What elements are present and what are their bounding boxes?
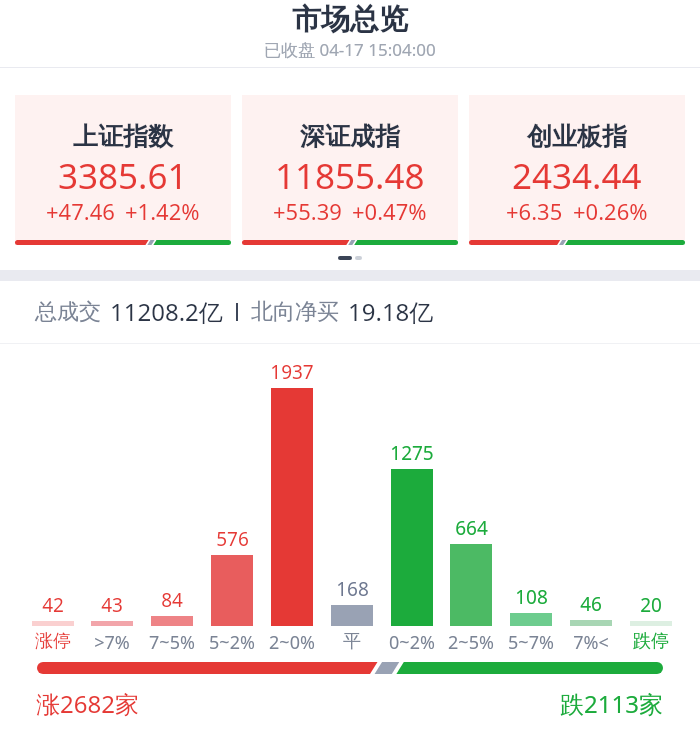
staticText: 1937 <box>270 359 314 385</box>
staticText: 20 <box>640 592 662 618</box>
staticText: 7~5% <box>149 630 195 655</box>
staticText: 2434.44 <box>512 152 642 200</box>
button[interactable]: 深证成指 <box>242 95 458 245</box>
staticText: 108 <box>515 584 548 610</box>
staticText: 19.18亿 <box>348 295 434 328</box>
staticText: 168 <box>336 576 369 602</box>
staticText: 11855.48 <box>275 152 425 200</box>
staticText: 43 <box>101 592 123 618</box>
staticText: +0.47% <box>352 196 427 226</box>
staticText: 664 <box>455 515 488 541</box>
staticText: 北向净买 <box>251 298 339 326</box>
staticText: 5~7% <box>508 630 554 655</box>
staticText: +1.42% <box>125 196 200 226</box>
staticText: 上证指数 <box>73 121 173 152</box>
staticText: 涨2682家 <box>36 687 139 720</box>
staticText: 跌2113家 <box>560 687 663 720</box>
staticText: 跌停 <box>633 630 669 653</box>
staticText: +55.39 <box>273 196 342 226</box>
staticText: 2~5% <box>448 630 494 655</box>
staticText: +47.46 <box>46 196 115 226</box>
staticText: 3385.61 <box>58 152 188 200</box>
staticText: 1275 <box>390 440 434 466</box>
staticText: >7% <box>94 630 130 655</box>
staticText: 576 <box>216 526 249 552</box>
staticText: 5~2% <box>209 630 255 655</box>
staticText: 已收盘 04-17 15:04:00 <box>264 38 436 61</box>
staticText: 84 <box>161 587 183 613</box>
staticText: 11208.2亿 <box>110 295 223 328</box>
button[interactable]: 创业板指 <box>469 95 685 245</box>
staticText: 0~2% <box>389 630 435 655</box>
staticText: 平 <box>343 630 361 653</box>
staticText: 42 <box>42 592 64 618</box>
staticText: 市场总览 <box>292 1 408 38</box>
staticText: 2~0% <box>269 630 315 655</box>
staticText: 涨停 <box>35 630 71 653</box>
staticText: 46 <box>580 591 602 617</box>
staticText: 创业板指 <box>527 121 627 152</box>
staticText: +6.35 <box>506 196 563 226</box>
staticText: 7%< <box>573 630 609 655</box>
staticText: 总成交 <box>35 298 101 326</box>
staticText: 深证成指 <box>300 121 400 152</box>
staticText: +0.26% <box>573 196 648 226</box>
button[interactable]: 上证指数 <box>15 95 231 245</box>
